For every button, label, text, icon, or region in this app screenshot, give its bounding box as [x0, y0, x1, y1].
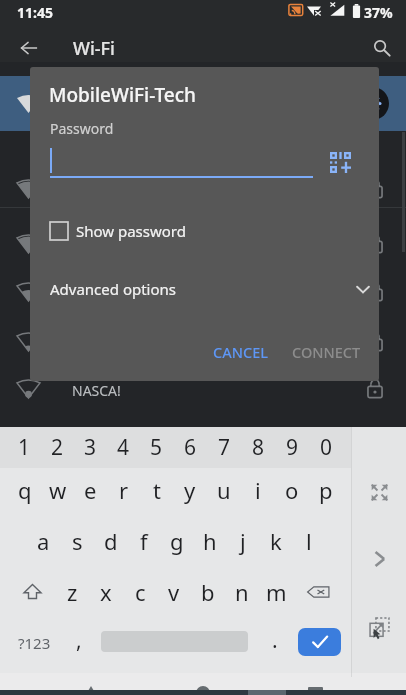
button[interactable]: f: [127, 519, 160, 563]
button[interactable]: Home: [185, 676, 221, 695]
staticText: 4: [117, 433, 130, 462]
button[interactable]: o: [275, 468, 309, 512]
button[interactable]: CONNECT: [283, 335, 370, 369]
button[interactable]: s: [60, 519, 94, 563]
button[interactable]: z: [56, 570, 89, 613]
staticText: v: [168, 577, 180, 607]
staticText: n: [235, 577, 249, 607]
button[interactable]: n: [225, 570, 259, 613]
staticText: j: [240, 526, 246, 556]
other: Shift: [20, 579, 45, 604]
button[interactable]: Recents: [297, 676, 333, 695]
button[interactable]: Vodafone-0192: [0, 265, 406, 317]
staticText: u: [217, 475, 231, 505]
staticText: x: [100, 577, 112, 607]
button[interactable]: x: [89, 570, 123, 613]
button[interactable]: NASCA!: [0, 362, 406, 414]
staticText: Advanced options: [50, 279, 177, 299]
staticText: c: [135, 577, 146, 607]
staticText: 8: [252, 433, 265, 462]
button[interactable]: Back: [9, 29, 49, 67]
button[interactable]: w: [41, 468, 74, 512]
staticText: b: [201, 577, 215, 607]
staticText: 7: [218, 433, 231, 462]
button[interactable]: Shift: [8, 570, 56, 613]
button[interactable]: c: [123, 570, 157, 613]
button[interactable]: Space: [98, 621, 250, 672]
button[interactable]: Resize window: [361, 609, 397, 645]
button[interactable]: 2: [41, 427, 74, 468]
button[interactable]: MobileWiFi-Tech: [0, 76, 406, 131]
button[interactable]: b: [191, 570, 225, 613]
staticText: Password: [50, 119, 114, 138]
staticText: 0: [320, 433, 333, 462]
button[interactable]: ?123: [8, 621, 60, 672]
staticText: q: [18, 475, 32, 505]
button[interactable]: Network settings: [356, 87, 389, 120]
button[interactable]: 8: [241, 427, 275, 468]
button[interactable]: Show password: [50, 221, 186, 241]
button[interactable]: m: [259, 570, 293, 613]
button[interactable]: Back: [73, 676, 109, 695]
staticText: 1: [18, 433, 31, 462]
button[interactable]: a: [26, 519, 60, 563]
staticText: t: [153, 475, 161, 505]
button[interactable]: Advanced options: [50, 276, 379, 302]
staticText: p: [319, 475, 333, 505]
button[interactable]: h: [193, 519, 226, 563]
staticText: MobileWiFi-Tech: [49, 82, 197, 108]
button[interactable]: CANCEL: [204, 335, 277, 369]
staticText: g: [170, 526, 184, 556]
button[interactable]: e: [74, 468, 107, 512]
button[interactable]: 0: [309, 427, 343, 468]
staticText: o: [285, 475, 299, 505]
button[interactable]: ,: [62, 621, 96, 672]
staticText: ?123: [18, 633, 51, 653]
button[interactable]: Expand keyboard: [361, 474, 397, 510]
button[interactable]: t: [140, 468, 173, 512]
button[interactable]: Search: [362, 29, 402, 67]
button[interactable]: 1: [8, 427, 41, 468]
staticText: 3: [84, 433, 97, 462]
staticText: 2: [51, 433, 64, 462]
staticText: 6: [184, 433, 197, 462]
button[interactable]: 3: [74, 427, 107, 468]
button[interactable]: q: [8, 468, 41, 512]
button[interactable]: y: [173, 468, 207, 512]
button[interactable]: u: [207, 468, 241, 512]
staticText: r: [119, 475, 129, 505]
staticText: CONNECT: [292, 342, 361, 362]
button[interactable]: 6: [173, 427, 207, 468]
staticText: MobileWiFi-Tech: [72, 96, 179, 115]
staticText: 37%: [364, 3, 393, 22]
staticText: f: [140, 526, 148, 556]
button[interactable]: r: [107, 468, 140, 512]
staticText: Wi-Fi: [73, 36, 115, 61]
button[interactable]: Next: [361, 541, 397, 577]
button[interactable]: Enter: [298, 628, 341, 656]
staticText: i: [255, 475, 261, 505]
staticText: TP-LINK_9F20: [72, 236, 162, 255]
button[interactable]: k: [259, 519, 292, 563]
button[interactable]: 9: [275, 427, 309, 468]
button[interactable]: .: [258, 621, 292, 672]
button[interactable]: v: [157, 570, 191, 613]
button[interactable]: Scan QR code: [320, 142, 360, 182]
button[interactable]: TP-LINK_9F20: [0, 217, 406, 269]
button[interactable]: 5: [140, 427, 173, 468]
button[interactable]: Backspace: [293, 570, 343, 613]
button[interactable]: AndroidAP: [0, 315, 406, 367]
button[interactable]: i: [241, 468, 275, 512]
button[interactable]: j: [226, 519, 259, 563]
button[interactable]: p: [309, 468, 343, 512]
button[interactable]: SKY-B4A2: [0, 162, 406, 214]
staticText: e: [84, 475, 97, 505]
button[interactable]: 7: [207, 427, 241, 468]
staticText: d: [104, 526, 118, 556]
button[interactable]: g: [160, 519, 193, 563]
button[interactable]: 4: [107, 427, 140, 468]
staticText: h: [203, 526, 217, 556]
button[interactable]: l: [292, 519, 325, 563]
button[interactable]: d: [94, 519, 127, 563]
